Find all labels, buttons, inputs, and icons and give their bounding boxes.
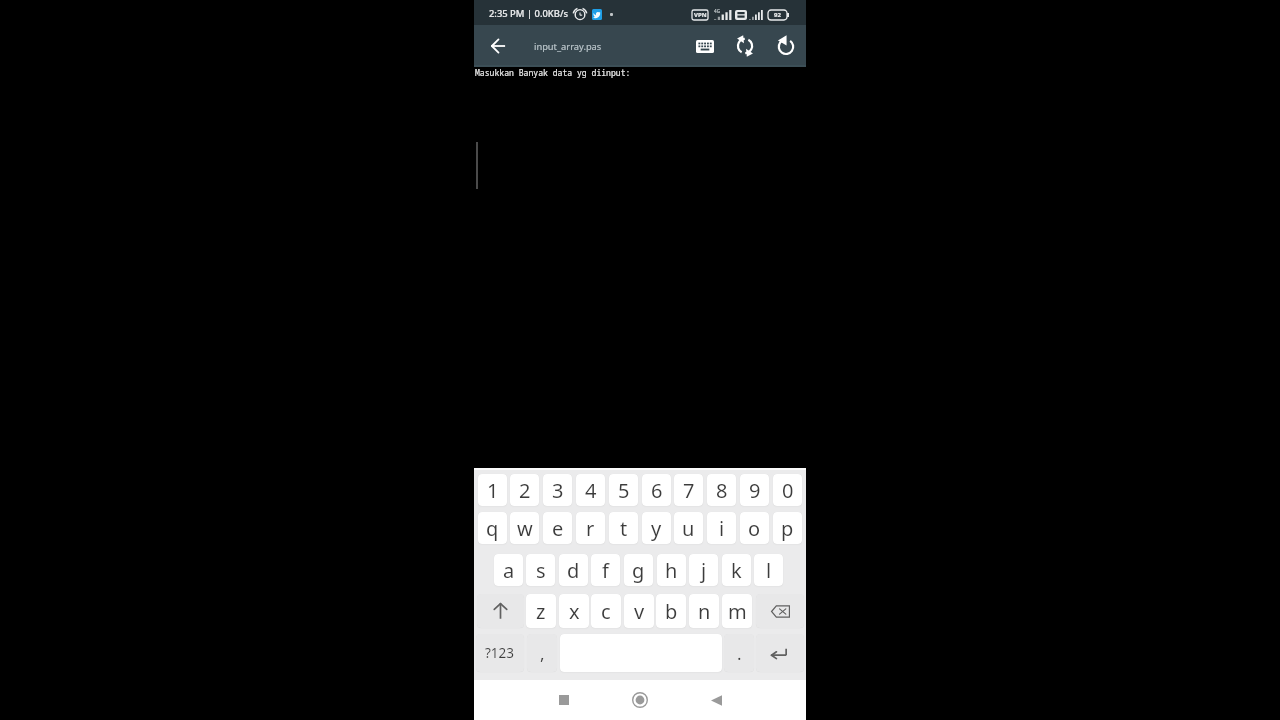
button[interactable]: shift <box>477 594 524 628</box>
staticText: e <box>552 515 564 542</box>
button[interactable]: g <box>624 554 653 586</box>
button[interactable]: j <box>689 554 718 586</box>
staticText: t <box>620 515 628 542</box>
staticText: 9 <box>749 477 761 504</box>
button[interactable]: 1 <box>478 474 507 506</box>
button[interactable]: r <box>576 512 605 544</box>
staticText: Masukkan Banyak data yg diinput: <box>475 67 631 78</box>
staticText: VPN <box>694 11 707 19</box>
staticText: o <box>748 515 761 542</box>
button[interactable]: backspace <box>756 594 804 628</box>
button[interactable]: 2 <box>510 474 539 506</box>
staticText: x <box>569 598 580 625</box>
button[interactable]: 0 <box>773 474 802 506</box>
staticText: m <box>728 598 747 625</box>
staticText: 0 <box>782 477 794 504</box>
button[interactable]: u <box>674 512 703 544</box>
button[interactable]: , <box>527 634 557 672</box>
button[interactable]: 3 <box>543 474 572 506</box>
button[interactable]: 7 <box>674 474 703 506</box>
button[interactable]: d <box>559 554 588 586</box>
staticText: q <box>486 515 499 542</box>
staticText: l <box>766 557 772 584</box>
staticText: 6 <box>651 477 663 504</box>
button[interactable]: s <box>526 554 555 586</box>
staticText: f <box>602 557 609 584</box>
button[interactable]: x <box>559 594 589 628</box>
button[interactable]: t <box>609 512 638 544</box>
button[interactable]: y <box>642 512 671 544</box>
staticText: k <box>731 557 742 584</box>
staticText: , <box>540 642 545 665</box>
button[interactable]: f <box>591 554 620 586</box>
staticText: d <box>567 557 580 584</box>
button[interactable]: 5 <box>609 474 638 506</box>
staticText: 5 <box>618 477 630 504</box>
button[interactable]: 4 <box>576 474 605 506</box>
staticText: j <box>701 557 707 584</box>
staticText: a <box>503 557 515 584</box>
staticText: z <box>536 598 546 625</box>
button[interactable]: Recents <box>550 686 578 714</box>
button[interactable]: n <box>689 594 719 628</box>
staticText: u <box>682 515 695 542</box>
button[interactable]: k <box>722 554 751 586</box>
button[interactable]: Back <box>486 34 510 58</box>
staticText: 3 <box>552 477 564 504</box>
staticText: ?123 <box>485 644 515 662</box>
button[interactable]: Back <box>702 686 730 714</box>
staticText: 1 <box>487 477 499 504</box>
button[interactable]: 9 <box>740 474 769 506</box>
staticText: 7 <box>683 477 695 504</box>
button[interactable]: h <box>657 554 686 586</box>
staticText: b <box>665 598 678 625</box>
button[interactable]: . <box>724 634 754 672</box>
button[interactable]: Home <box>626 686 654 714</box>
staticText: c <box>601 598 611 625</box>
staticText: 4 <box>585 477 597 504</box>
staticText: 2 <box>519 477 531 504</box>
staticText: s <box>536 557 546 584</box>
button[interactable]: e <box>543 512 572 544</box>
button[interactable]: 8 <box>707 474 736 506</box>
staticText: y <box>651 515 662 542</box>
button[interactable]: b <box>656 594 686 628</box>
button[interactable]: w <box>510 512 539 544</box>
button[interactable]: p <box>773 512 802 544</box>
staticText: 8 <box>716 477 728 504</box>
button[interactable]: v <box>624 594 654 628</box>
button[interactable]: m <box>722 594 752 628</box>
button[interactable]: l <box>754 554 783 586</box>
button[interactable]: Toggle keyboard <box>693 34 717 58</box>
staticText: w <box>517 515 533 542</box>
staticText: 92 <box>774 11 781 19</box>
button[interactable]: o <box>740 512 769 544</box>
button[interactable]: 6 <box>642 474 671 506</box>
staticText: 4G <box>714 8 720 14</box>
staticText: n <box>698 598 711 625</box>
button[interactable]: ?123 <box>476 634 524 672</box>
staticText: i <box>719 515 725 542</box>
staticText: input_array.pas <box>534 40 602 53</box>
staticText: g <box>632 557 645 584</box>
button[interactable]: a <box>494 554 523 586</box>
button[interactable]: Run <box>733 34 757 58</box>
button[interactable]: c <box>591 594 621 628</box>
staticText: p <box>781 515 794 542</box>
staticText: 2:35 PM | 0.0KB/s <box>489 7 569 20</box>
button[interactable]: i <box>707 512 736 544</box>
staticText: . <box>737 642 742 665</box>
staticText: r <box>586 515 595 542</box>
button[interactable]: enter <box>756 634 804 672</box>
button[interactable]: z <box>526 594 556 628</box>
staticText: h <box>665 557 678 584</box>
staticText: v <box>634 598 645 625</box>
button[interactable]: Undo <box>774 34 798 58</box>
button[interactable]: q <box>478 512 507 544</box>
